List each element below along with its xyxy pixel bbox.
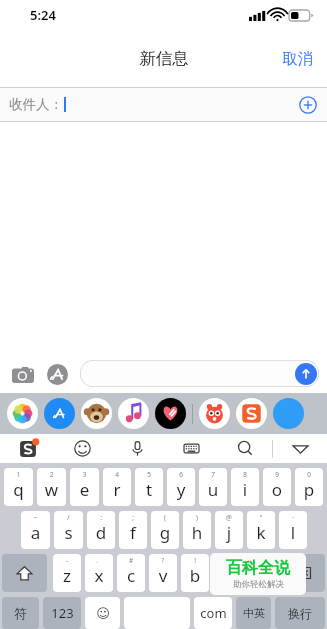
- button[interactable]: 5: [135, 468, 163, 506]
- staticText: l: [279, 521, 307, 544]
- button[interactable]: Music: [118, 398, 149, 429]
- staticText: ?: [149, 556, 177, 565]
- button[interactable]: Sogou: [236, 398, 267, 429]
- button[interactable]: [124, 597, 190, 629]
- button[interactable]: 6: [167, 468, 195, 506]
- button[interactable]: Hide keyboard: [273, 434, 327, 463]
- button[interactable]: 4: [103, 468, 131, 506]
- staticText: :: [87, 513, 115, 522]
- staticText: 符: [14, 605, 27, 621]
- staticText: 7: [199, 470, 227, 479]
- button[interactable]: App Store: [42, 359, 72, 389]
- staticText: h: [183, 521, 211, 544]
- staticText: w: [37, 478, 66, 501]
- button[interactable]: More: [273, 398, 304, 429]
- button[interactable]: Photos: [7, 398, 38, 429]
- button[interactable]: Send: [295, 363, 317, 385]
- staticText: r: [103, 478, 131, 501]
- button[interactable]: Sticker: [199, 398, 230, 429]
- staticText: 8: [231, 470, 259, 479]
- button[interactable]: -: [53, 554, 81, 592]
- staticText: m: [245, 564, 273, 587]
- staticText: a: [21, 521, 50, 544]
- button[interactable]: ~: [21, 511, 50, 549]
- button[interactable]: Search: [218, 434, 272, 463]
- button[interactable]: ·: [279, 511, 307, 549]
- button[interactable]: 中英: [236, 597, 271, 629]
- button[interactable]: Emoji: [55, 434, 110, 463]
- button[interactable]: Digital Touch: [155, 398, 186, 429]
- staticText: 0: [295, 470, 323, 479]
- button[interactable]: 1: [4, 468, 33, 506]
- button[interactable]: Delete: [279, 554, 325, 592]
- staticText: /: [54, 513, 83, 522]
- button[interactable]: Shift: [2, 554, 47, 592]
- staticText: ": [247, 513, 275, 522]
- button[interactable]: 123: [43, 597, 81, 629]
- button[interactable]: 、: [85, 554, 113, 592]
- button[interactable]: Voice input: [110, 434, 164, 463]
- button[interactable]: 取消: [268, 41, 327, 77]
- button[interactable]: &: [213, 554, 241, 592]
- button[interactable]: #: [117, 554, 145, 592]
- staticText: 、: [85, 556, 113, 564]
- button[interactable]: 百科全说: [210, 553, 306, 595]
- button[interactable]: (: [151, 511, 179, 549]
- staticText: z: [53, 564, 81, 587]
- staticText: k: [247, 521, 275, 544]
- staticText: 5:24: [30, 6, 56, 24]
- button[interactable]: @: [215, 511, 243, 549]
- button[interactable]: 7: [199, 468, 227, 506]
- button[interactable]: 3: [70, 468, 99, 506]
- staticText: s: [54, 521, 83, 544]
- button[interactable]: ): [183, 511, 211, 549]
- button[interactable]: Keyboard: [164, 434, 218, 463]
- staticText: n: [213, 564, 241, 587]
- button[interactable]: 9: [263, 468, 291, 506]
- button[interactable]: /: [54, 511, 83, 549]
- staticText: q: [4, 478, 33, 501]
- staticText: e: [70, 478, 99, 501]
- button[interactable]: com: [194, 597, 232, 629]
- button[interactable]: :: [87, 511, 115, 549]
- staticText: ): [183, 513, 211, 522]
- button[interactable]: Memoji: [81, 398, 112, 429]
- button[interactable]: ☺: [85, 597, 120, 629]
- button[interactable]: ?: [149, 554, 177, 592]
- button[interactable]: Camera: [8, 359, 38, 389]
- button[interactable]: !: [181, 554, 209, 592]
- staticText: i: [231, 478, 259, 501]
- button[interactable]: 2: [37, 468, 66, 506]
- staticText: ，: [245, 556, 273, 564]
- button[interactable]: 8: [231, 468, 259, 506]
- staticText: &: [213, 556, 241, 565]
- staticText: d: [87, 521, 115, 544]
- staticText: com: [200, 604, 227, 622]
- button[interactable]: 0: [295, 468, 323, 506]
- staticText: !: [181, 556, 209, 565]
- button[interactable]: 收件人：: [0, 88, 327, 121]
- staticText: y: [167, 478, 195, 501]
- button[interactable]: 符: [2, 597, 39, 629]
- staticText: 5: [135, 470, 163, 479]
- button[interactable]: Send: [80, 360, 319, 387]
- staticText: 2: [37, 470, 66, 479]
- button[interactable]: ": [247, 511, 275, 549]
- staticText: @: [215, 513, 243, 522]
- button[interactable]: ，: [245, 554, 273, 592]
- staticText: p: [295, 478, 323, 501]
- staticText: (: [151, 513, 179, 522]
- staticText: ;: [119, 513, 147, 522]
- staticText: j: [215, 521, 243, 544]
- staticText: c: [117, 564, 145, 587]
- button[interactable]: 换行: [275, 597, 325, 629]
- staticText: x: [85, 564, 113, 587]
- button[interactable]: Add contact: [299, 96, 317, 114]
- staticText: u: [199, 478, 227, 501]
- button[interactable]: ;: [119, 511, 147, 549]
- button[interactable]: Sogou: [0, 434, 55, 463]
- staticText: f: [119, 521, 147, 544]
- staticText: ~: [21, 513, 50, 522]
- button[interactable]: App Store: [44, 398, 75, 429]
- staticText: 1: [4, 470, 33, 479]
